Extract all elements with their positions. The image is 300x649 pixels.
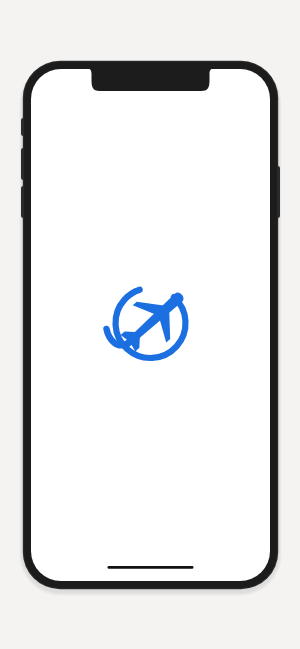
button[interactable]: App logo [95,270,205,380]
